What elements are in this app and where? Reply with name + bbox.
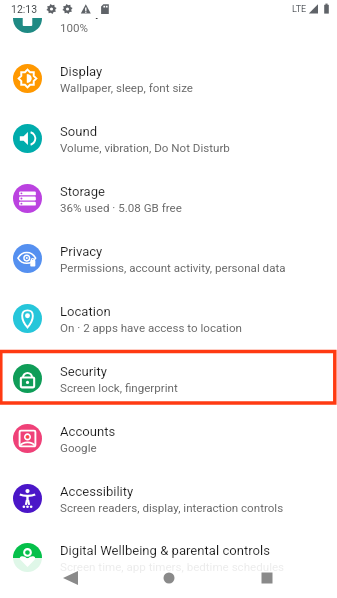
staticText: Privacy xyxy=(60,244,103,259)
button[interactable]: Digital Wellbeing & parental controls xyxy=(0,528,337,586)
staticText: Screen readers, display, interaction con… xyxy=(60,501,284,515)
button[interactable]: Battery xyxy=(0,0,337,48)
staticText: Storage xyxy=(60,184,105,199)
staticText: Screen lock, fingerprint xyxy=(60,381,178,395)
staticText: 12:13 xyxy=(11,3,38,15)
button[interactable]: Location xyxy=(0,288,337,348)
button[interactable]: Recent apps xyxy=(247,558,287,598)
staticText: Screen time, app timers, bedtime schedul… xyxy=(60,560,285,574)
staticText: Volume, vibration, Do Not Disturb xyxy=(60,141,230,155)
staticText: 100% xyxy=(60,21,89,35)
staticText: Accessibility xyxy=(60,484,134,499)
button[interactable]: Privacy xyxy=(0,228,337,288)
button[interactable]: Accessibility xyxy=(0,468,337,528)
button[interactable]: Security xyxy=(0,348,337,408)
staticText: Location xyxy=(60,304,111,319)
staticText: 36% used · 5.08 GB free xyxy=(60,201,182,215)
staticText: Digital Wellbeing & parental controls xyxy=(60,543,270,558)
button[interactable]: Back xyxy=(50,558,90,598)
staticText: Permissions, account activity, personal … xyxy=(60,261,286,275)
button[interactable]: Home xyxy=(149,558,189,598)
button[interactable]: Sound xyxy=(0,108,337,168)
staticText: Battery xyxy=(60,4,102,19)
staticText: Sound xyxy=(60,124,98,139)
staticText: Security xyxy=(60,364,107,379)
button[interactable]: Storage xyxy=(0,168,337,228)
staticText: Wallpaper, sleep, font size xyxy=(60,81,193,95)
staticText: Accounts xyxy=(60,424,116,439)
button[interactable]: Accounts xyxy=(0,408,337,468)
staticText: Google xyxy=(60,441,97,455)
button[interactable]: Display xyxy=(0,48,337,108)
staticText: Display xyxy=(60,64,103,79)
staticText: On · 2 apps have access to location xyxy=(60,321,242,335)
staticText: LTE xyxy=(292,4,307,15)
